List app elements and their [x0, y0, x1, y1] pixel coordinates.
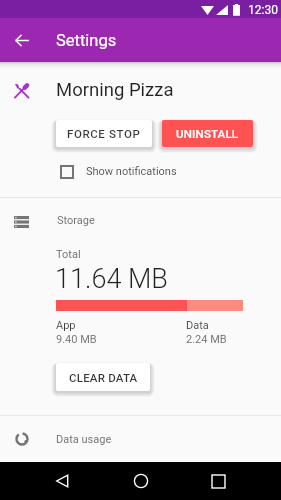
button[interactable]: Back [43, 462, 81, 500]
staticText: 2.24 MB [186, 333, 227, 346]
staticText: Storage [57, 214, 95, 227]
staticText: Morning Pizza [56, 79, 174, 101]
staticText: FORCE STOP [67, 127, 141, 140]
button[interactable]: UNINSTALL [162, 120, 253, 147]
staticText: CLEAR DATA [69, 371, 138, 384]
button[interactable]: Show notifications [56, 159, 180, 184]
staticText: Settings [56, 31, 117, 50]
staticText: App [56, 319, 76, 332]
button[interactable]: Recents [199, 462, 237, 500]
staticText: Data [186, 319, 209, 332]
button[interactable]: Home [122, 462, 160, 500]
staticText: Show notifications [86, 165, 177, 178]
staticText: Total [56, 248, 81, 261]
staticText: Data usage [56, 433, 112, 446]
button[interactable]: Back [8, 18, 36, 62]
staticText: UNINSTALL [176, 127, 239, 140]
button[interactable]: CLEAR DATA [56, 363, 150, 391]
button[interactable]: FORCE STOP [56, 120, 152, 147]
button[interactable]: Data usage [0, 416, 281, 462]
staticText: 9.40 MB [56, 333, 97, 346]
staticText: 11.64 MB [55, 263, 168, 295]
staticText: 12:30 [248, 3, 278, 17]
